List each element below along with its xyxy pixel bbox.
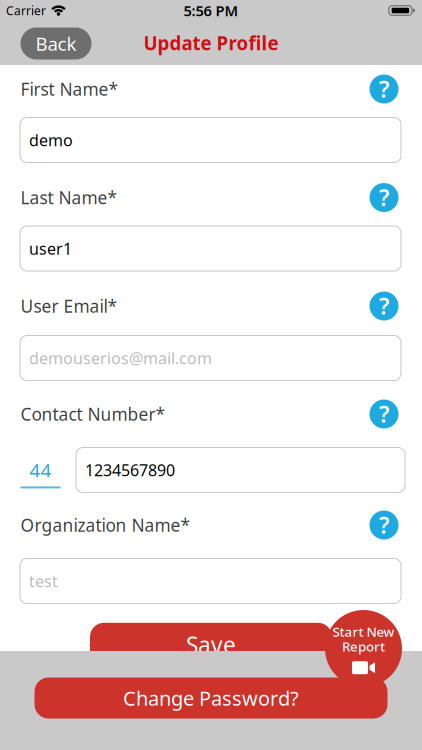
textField[interactable]: test [20,558,401,603]
staticText: ? [379,291,389,321]
button[interactable]: Country code [20,458,60,488]
staticText: Back [35,31,76,56]
staticText: user1 [29,238,72,259]
button[interactable]: Save [90,623,332,667]
staticText: demouserios@mail.com [29,347,212,369]
staticText: First Name* [20,77,118,100]
button[interactable]: Help [369,510,398,540]
staticText: 44 [29,458,51,482]
staticText: Organization Name* [20,513,190,536]
button[interactable]: Help [369,399,398,429]
textField[interactable]: demouserios@mail.com [20,335,401,380]
textField[interactable]: demo [20,117,401,162]
staticText: ? [379,182,389,212]
staticText: Contact Number* [20,402,165,425]
textField[interactable]: 1234567890 [76,447,405,492]
button[interactable]: Help [369,74,398,104]
staticText: Start New [332,623,394,640]
button[interactable]: Start New [325,610,402,687]
staticText: 5:56 PM [183,1,238,20]
staticText: Last Name* [20,186,117,209]
staticText: 1234567890 [85,459,175,481]
button[interactable]: Help [369,291,398,321]
staticText: Carrier [6,2,46,18]
staticText: ? [379,510,389,540]
staticText: test [29,570,58,592]
staticText: Change Password? [123,685,299,711]
button[interactable]: Change Password? [34,677,387,718]
staticText: Save [186,630,236,660]
staticText: ? [379,74,389,104]
button[interactable]: Back [20,27,91,59]
staticText: demo [29,129,73,151]
staticText: User Email* [20,294,117,317]
textField[interactable]: user1 [20,226,401,271]
staticText: Update Profile [143,31,278,55]
staticText: Report [342,637,385,655]
button[interactable]: Help [369,182,398,212]
staticText: ? [379,399,389,429]
